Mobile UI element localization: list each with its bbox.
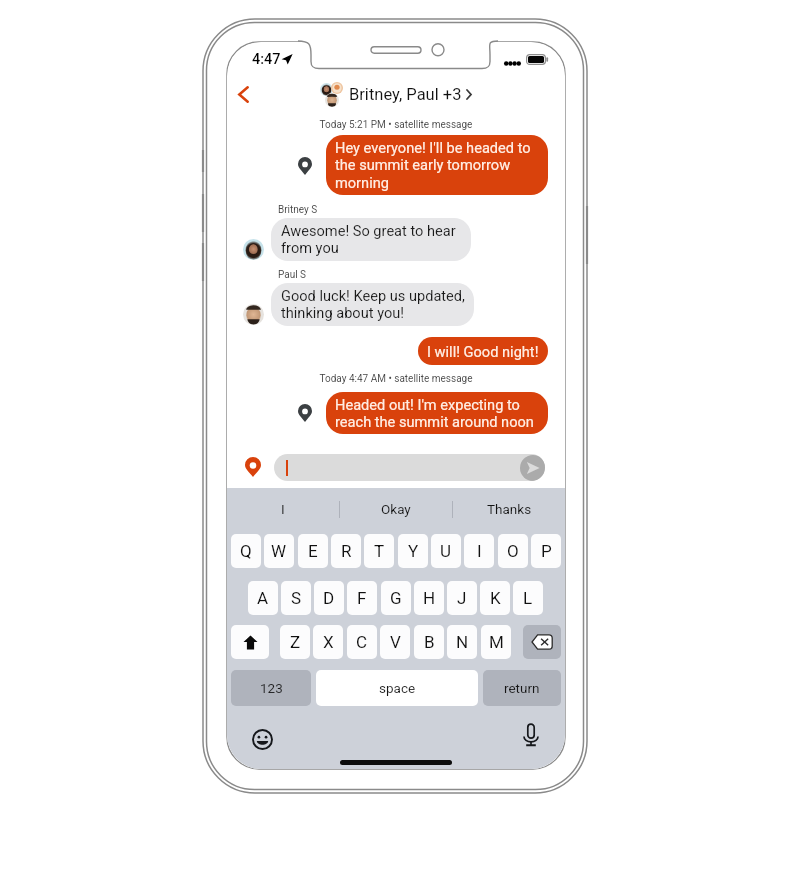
button[interactable]: Send (274, 454, 545, 481)
staticText: return (504, 680, 540, 696)
staticText: Paul S (278, 269, 307, 281)
button[interactable]: X (313, 625, 343, 659)
button[interactable]: C (347, 625, 377, 659)
button[interactable]: A (248, 581, 278, 615)
staticText: V (390, 632, 401, 652)
button[interactable]: N (447, 625, 477, 659)
button[interactable]: B (414, 625, 444, 659)
staticText: B (424, 632, 435, 652)
button[interactable]: U (431, 534, 461, 568)
button[interactable]: Backspace (523, 625, 561, 659)
staticText: F (357, 588, 367, 608)
staticText: X (323, 632, 334, 652)
button[interactable]: R (331, 534, 361, 568)
button[interactable]: J (447, 581, 477, 615)
staticText: Z (290, 632, 301, 652)
staticText: W (271, 541, 287, 561)
button[interactable]: Britney, Paul +3 (320, 82, 472, 107)
button[interactable]: D (314, 581, 344, 615)
staticText: D (323, 588, 335, 608)
staticText: 123 (260, 680, 283, 696)
button[interactable]: I (227, 490, 339, 528)
staticText: I will! Good night! (427, 343, 539, 360)
button[interactable]: Thanks (453, 490, 565, 528)
staticText: M (489, 632, 504, 652)
button[interactable]: G (381, 581, 411, 615)
staticText: T (374, 541, 385, 561)
button[interactable]: Z (280, 625, 310, 659)
button[interactable]: Emoji (248, 725, 276, 753)
button[interactable]: Satellite location (241, 455, 265, 479)
button[interactable]: L (513, 581, 543, 615)
button[interactable]: O (498, 534, 528, 568)
staticText: space (379, 680, 416, 696)
staticText: J (457, 588, 467, 608)
staticText: I (477, 541, 482, 561)
staticText: N (456, 632, 469, 652)
staticText: G (390, 588, 402, 608)
staticText: K (490, 588, 501, 608)
staticText: Good luck! Keep us updated, thinking abo… (281, 287, 467, 321)
staticText: L (523, 588, 533, 608)
button[interactable]: Y (398, 534, 428, 568)
button[interactable]: H (414, 581, 444, 615)
button[interactable]: E (298, 534, 328, 568)
button[interactable]: P (531, 534, 561, 568)
staticText: R (341, 541, 352, 561)
button[interactable]: space (316, 670, 478, 706)
button[interactable]: Q (231, 534, 261, 568)
button[interactable]: Good luck! Keep us updated, thinking abo… (271, 283, 474, 326)
staticText: H (423, 588, 436, 608)
button[interactable]: I will! Good night! (418, 337, 548, 365)
staticText: Y (408, 541, 419, 561)
button[interactable]: M (481, 625, 511, 659)
staticText: S (291, 588, 302, 608)
button[interactable]: return (483, 670, 561, 706)
button[interactable]: Hey everyone! I'll be headed to the summ… (326, 135, 548, 195)
button[interactable]: Shift (231, 625, 269, 659)
button[interactable]: Send (520, 455, 545, 481)
button[interactable]: I (464, 534, 494, 568)
button[interactable]: W (264, 534, 294, 568)
staticText: Today 4:47 AM • satellite message (227, 373, 565, 385)
button[interactable]: V (380, 625, 410, 659)
button[interactable]: Dictate (517, 721, 545, 749)
staticText: Awesome! So great to hear from you (281, 222, 464, 256)
staticText: Okay (381, 501, 411, 517)
staticText: Britney, Paul +3 (349, 85, 462, 104)
button[interactable]: 123 (231, 670, 311, 706)
staticText: U (440, 541, 452, 561)
staticText: O (507, 541, 519, 561)
staticText: Hey everyone! I'll be headed to the summ… (335, 139, 543, 191)
staticText: P (541, 541, 552, 561)
button[interactable]: S (281, 581, 311, 615)
staticText: 4:47 (252, 51, 281, 68)
staticText: Q (240, 541, 252, 561)
button[interactable]: Headed out! I'm expecting to reach the s… (326, 392, 548, 434)
staticText: Today 5:21 PM • satellite message (227, 119, 565, 131)
staticText: I (281, 501, 285, 517)
staticText: Headed out! I'm expecting to reach the s… (335, 396, 543, 430)
staticText: E (308, 541, 318, 561)
button[interactable]: F (347, 581, 377, 615)
staticText: C (356, 632, 368, 652)
button[interactable]: Back (228, 79, 258, 109)
button[interactable]: Okay (340, 490, 452, 528)
button[interactable]: T (364, 534, 394, 568)
button[interactable]: K (480, 581, 510, 615)
staticText: Thanks (487, 501, 532, 517)
staticText: Britney S (278, 204, 318, 216)
button[interactable]: Awesome! So great to hear from you (271, 218, 471, 261)
staticText: A (257, 588, 269, 608)
